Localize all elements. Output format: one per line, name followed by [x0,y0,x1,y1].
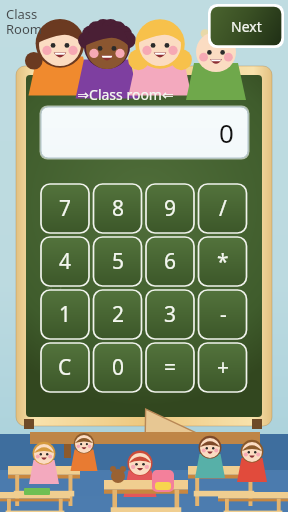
staticText: 7 [59,194,72,223]
staticText: = [164,353,177,382]
staticText: - [220,300,227,329]
button[interactable]: 8 [94,184,142,233]
staticText: * [217,247,229,276]
button[interactable]: 5 [94,237,142,286]
button[interactable]: Next [208,4,284,48]
staticText: 0 [219,115,234,150]
button[interactable]: 3 [146,290,194,339]
staticText: 6 [164,247,177,276]
button[interactable]: 1 [41,290,89,339]
button[interactable]: = [146,343,194,392]
button[interactable]: 6 [146,237,194,286]
staticText: / [219,194,227,223]
button[interactable]: 2 [94,290,142,339]
staticText: 1 [59,300,72,329]
staticText: 0 [112,353,125,382]
staticText: 9 [164,194,177,223]
button[interactable]: - [199,290,247,339]
button[interactable]: 4 [41,237,89,286]
button[interactable]: 7 [41,184,89,233]
button[interactable]: 0 [94,343,142,392]
button[interactable]: C [41,343,89,392]
button[interactable]: 9 [146,184,194,233]
button[interactable]: * [199,237,247,286]
staticText: ⇒Class room⇐ [77,85,174,104]
staticText: + [217,353,230,382]
staticText: 4 [59,247,72,276]
staticText: Next [231,17,262,36]
staticText: 5 [112,247,125,276]
staticText: 2 [112,300,125,329]
button[interactable]: + [199,343,247,392]
staticText: C [58,353,72,382]
button[interactable]: / [199,184,247,233]
staticText: 8 [112,194,125,223]
staticText: 3 [164,300,177,329]
staticText: Class Room [6,5,42,38]
